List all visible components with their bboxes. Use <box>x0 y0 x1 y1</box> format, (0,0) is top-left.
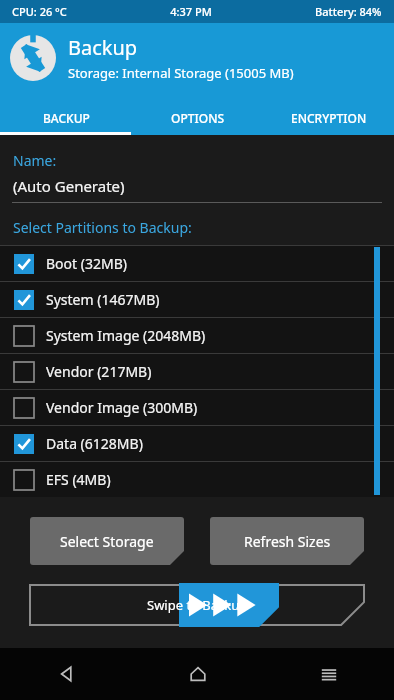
button[interactable]: Back <box>0 648 132 700</box>
button[interactable]: Vendor Image (300MB) <box>0 390 394 425</box>
staticText: OPTIONS <box>171 110 225 126</box>
button[interactable]: Boot (32MB) <box>0 246 394 281</box>
staticText: Select Storage <box>60 532 154 551</box>
staticText: Data (6128MB) <box>46 434 143 453</box>
button[interactable]: Menu <box>263 648 394 700</box>
staticText: ENCRYPTION <box>291 110 367 126</box>
staticText: Backup <box>68 34 138 61</box>
button[interactable]: Vendor (217MB) <box>0 354 394 389</box>
button[interactable]: System Image (2048MB) <box>0 318 394 353</box>
staticText: Name: <box>13 151 57 170</box>
staticText: Vendor Image (300MB) <box>46 398 198 417</box>
staticText: Battery: 84% <box>315 4 382 19</box>
staticText: Swipe to Backup <box>147 596 248 614</box>
staticText: EFS (4MB) <box>46 470 111 489</box>
staticText: Select Partitions to Backup: <box>13 218 192 237</box>
staticText: Vendor (217MB) <box>46 362 152 381</box>
staticText: Storage: Internal Storage (15005 MB) <box>68 64 294 82</box>
staticText: System (1467MB) <box>46 290 160 309</box>
button[interactable]: EFS (4MB) <box>0 462 394 497</box>
button[interactable]: Data (6128MB) <box>0 426 394 461</box>
staticText: System Image (2048MB) <box>46 326 206 345</box>
button[interactable]: ENCRYPTION <box>263 101 394 135</box>
staticText: Boot (32MB) <box>46 254 127 273</box>
button[interactable]: System (1467MB) <box>0 282 394 317</box>
button[interactable]: Select Storage <box>30 517 184 565</box>
button[interactable]: BACKUP <box>0 101 132 135</box>
staticText: Refresh Sizes <box>244 532 331 551</box>
button[interactable]: OPTIONS <box>132 101 263 135</box>
button[interactable]: Refresh Sizes <box>210 517 364 565</box>
staticText: CPU: 26 °C <box>12 4 67 19</box>
button[interactable]: Home <box>132 648 263 700</box>
staticText: 4:37 PM <box>67 4 315 19</box>
button[interactable]: Swipe to Backup <box>28 583 366 627</box>
staticText: (Auto Generate) <box>13 176 125 196</box>
staticText: BACKUP <box>43 110 90 126</box>
